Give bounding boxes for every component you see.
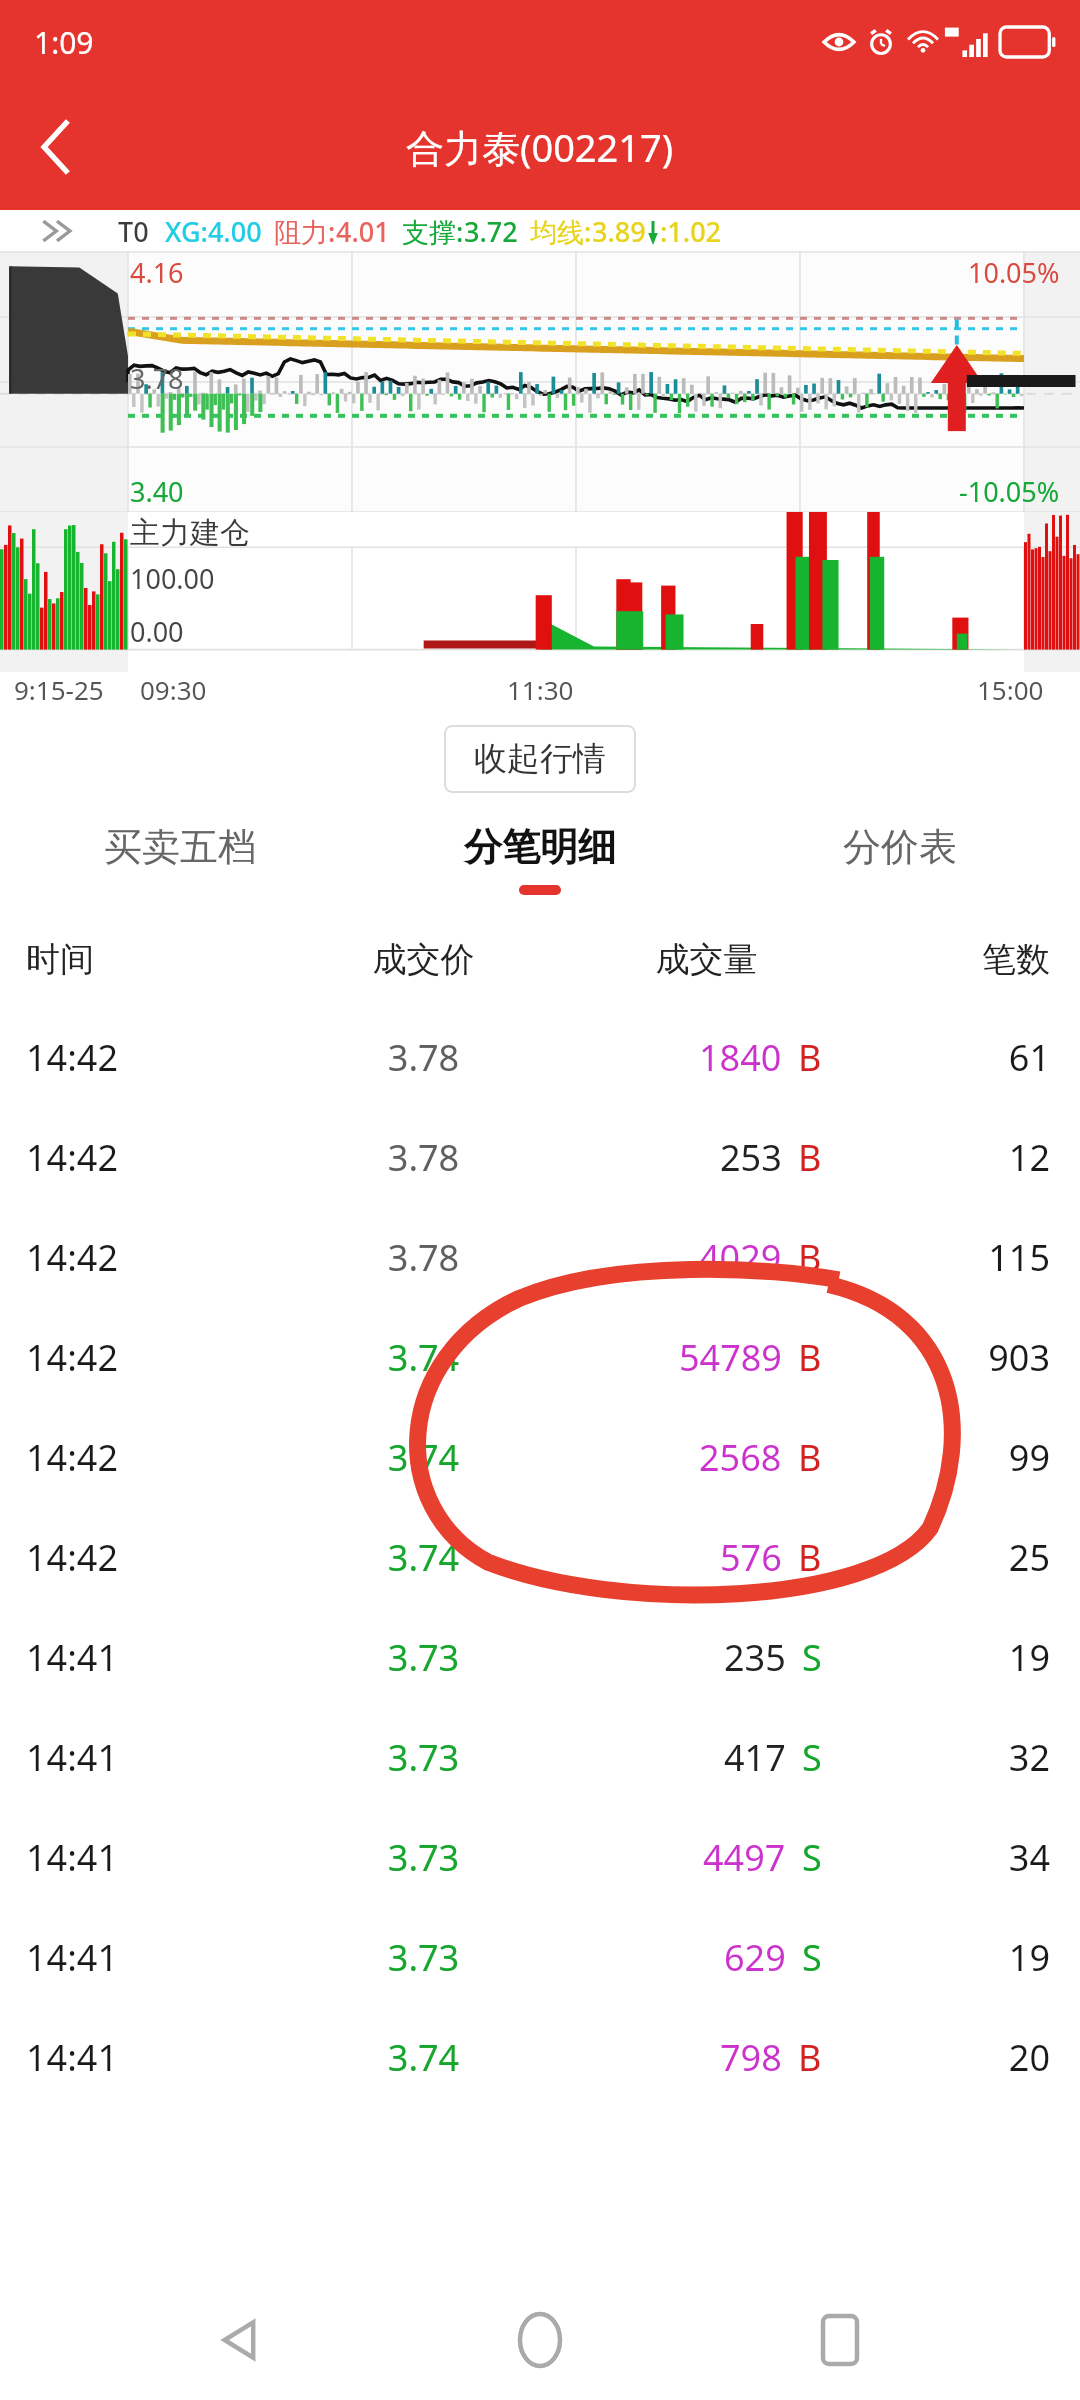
staticText: 成交量 [565,938,848,981]
staticText: 253 [720,1133,782,1182]
staticText: 09:30 [140,672,207,707]
button[interactable]: Recents [780,2280,900,2400]
staticText: 3.74 [282,1333,565,1382]
staticText: 14:41 [26,1933,282,1982]
staticText: 3.78 [282,1233,565,1282]
staticText: 3.89 [592,213,646,250]
staticText: 主力建仓 [130,514,250,552]
staticText: 14:41 [26,1733,282,1782]
staticText: 235 [724,1633,786,1682]
button[interactable]: 分笔明细 [360,811,720,911]
staticText: 61 [848,1033,1050,1082]
button[interactable]: 14:42 [0,1507,1080,1607]
staticText: 1:09 [34,22,94,63]
button[interactable]: 14:41 [0,1707,1080,1807]
staticText: 分笔明细 [464,823,616,871]
staticText: 0.00 [130,613,184,650]
staticText: 576 [720,1533,782,1582]
staticText: 2568 [699,1433,782,1482]
staticText: :1.02 [660,213,722,250]
button[interactable]: 分价表 [720,811,1080,911]
staticText: 支撑: [402,213,464,250]
staticText: S [802,1833,822,1882]
staticText: 3.78 [282,1033,565,1082]
staticText: 3.74 [282,1533,565,1582]
staticText: 笔数 [848,938,1050,981]
staticText: B [798,1233,822,1282]
staticText: 14:42 [26,1333,282,1382]
staticText: 32 [848,1733,1050,1782]
button[interactable]: Home [480,2280,600,2400]
staticText: 3.78 [130,360,184,397]
staticText: 11:30 [507,672,574,707]
button[interactable]: 14:42 [0,1307,1080,1407]
button[interactable]: 14:42 [0,1007,1080,1107]
staticText: 14:42 [26,1133,282,1182]
staticText: 3.72 [464,213,518,250]
staticText: B [798,1033,822,1082]
staticText: 9:15-25 [14,672,104,707]
button[interactable]: 14:42 [0,1107,1080,1207]
staticText: 34 [848,1833,1050,1882]
button[interactable]: Back [14,104,100,190]
staticText: 买卖五档 [104,823,256,871]
staticText: 4497 [703,1833,786,1882]
staticText: 25 [848,1533,1050,1582]
staticText: 成交价 [282,938,565,981]
staticText: S [802,1933,822,1982]
staticText: 14:42 [26,1233,282,1282]
staticText: 4029 [699,1233,782,1282]
staticText: -10.05% [959,473,1060,510]
staticText: XG:4.00 [165,213,262,250]
staticText: 798 [720,2033,782,2082]
staticText: 14:42 [26,1433,282,1482]
staticText: 3.73 [282,1633,565,1682]
button[interactable]: 14:41 [0,1807,1080,1907]
staticText: 3.40 [130,473,184,510]
staticText: 4.16 [130,254,184,291]
staticText: 14:41 [26,1833,282,1882]
staticText: 均线: [530,213,592,250]
button[interactable]: 14:41 [0,2007,1080,2107]
staticText: S [802,1733,822,1782]
button[interactable]: 14:41 [0,1607,1080,1707]
staticText: 1840 [699,1033,782,1082]
button[interactable]: 14:42 [0,1207,1080,1307]
button[interactable]: 买卖五档 [0,811,360,911]
staticText: 3.73 [282,1833,565,1882]
staticText: 阻力: [274,213,336,250]
staticText: 19 [848,1933,1050,1982]
staticText: 10.05% [968,254,1060,291]
staticText: T0 [118,213,149,250]
staticText: B [798,1333,822,1382]
staticText: 903 [848,1333,1050,1382]
staticText: 14:41 [26,2033,282,2082]
staticText: 19 [848,1633,1050,1682]
staticText: 时间 [26,938,282,981]
button[interactable]: 14:42 [0,1407,1080,1507]
staticText: 99 [848,1433,1050,1482]
staticText: B [798,1533,822,1582]
staticText: 4.01 [336,213,390,250]
staticText: 12 [848,1133,1050,1182]
staticText: 3.73 [282,1733,565,1782]
button[interactable]: Back [180,2280,300,2400]
staticText: 14:41 [26,1633,282,1682]
staticText: 收起行情 [474,738,606,780]
staticText: S [802,1633,822,1682]
staticText: 100.00 [130,560,215,597]
staticText: 合力泰(002217) [406,121,674,173]
staticText: 115 [848,1233,1050,1282]
button[interactable]: 14:41 [0,1907,1080,2007]
staticText: 3.74 [282,1433,565,1482]
staticText: 629 [724,1933,786,1982]
staticText: 14:42 [26,1533,282,1582]
staticText: 分价表 [843,823,957,871]
staticText: 3.73 [282,1933,565,1982]
staticText: 14:42 [26,1033,282,1082]
staticText: 3.74 [282,2033,565,2082]
staticText: 417 [724,1733,786,1782]
staticText: B [798,2033,822,2082]
staticText: B [798,1133,822,1182]
button[interactable]: 收起行情 [444,725,636,793]
